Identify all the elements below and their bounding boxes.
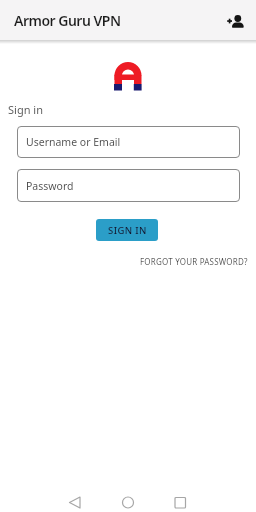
staticText: Username or Email xyxy=(26,135,121,149)
staticText: Password xyxy=(26,179,74,193)
staticText: Sign in xyxy=(8,102,43,117)
staticText: SIGN IN xyxy=(108,224,147,237)
staticText: FORGOT YOUR PASSWORD? xyxy=(140,256,248,267)
staticText: Armor Guru VPN xyxy=(14,11,121,30)
